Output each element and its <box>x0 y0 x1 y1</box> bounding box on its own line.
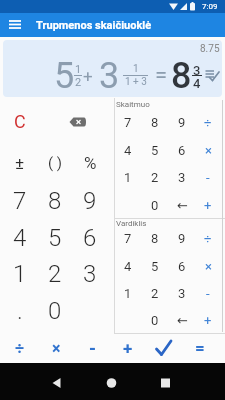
button[interactable]: ÷ <box>188 102 225 142</box>
button[interactable]: 9 <box>70 181 110 221</box>
button[interactable]: 4 <box>108 130 148 170</box>
staticText: ÷ <box>15 339 25 358</box>
button[interactable]: × <box>188 246 225 286</box>
staticText: 0 <box>48 297 62 325</box>
button[interactable]: 7 <box>108 102 148 142</box>
staticText: 8 <box>151 231 159 246</box>
button[interactable]: ÷ <box>188 218 225 258</box>
button[interactable]: 9 <box>162 218 202 258</box>
button[interactable]: 1 <box>0 254 40 294</box>
staticText: ← <box>177 198 188 213</box>
button[interactable]: × <box>188 130 225 170</box>
button[interactable]: ± <box>0 143 40 183</box>
button[interactable]: 8 <box>135 218 175 258</box>
button[interactable]: 5 <box>35 218 75 258</box>
staticText: 4 <box>13 224 27 252</box>
staticText: 4 <box>124 143 132 158</box>
staticText: 6 <box>83 224 97 252</box>
button[interactable]: 8 <box>35 181 75 221</box>
staticText: 5 <box>151 143 159 158</box>
button[interactable]: 2 <box>35 254 75 294</box>
button[interactable]: 0 <box>135 185 175 225</box>
button[interactable]: 3 <box>162 157 202 197</box>
button[interactable]: 1 <box>108 157 148 197</box>
button[interactable]: 4 <box>0 218 40 258</box>
staticText: C <box>14 111 26 132</box>
staticText: 2 <box>151 170 159 185</box>
button[interactable]: 2 <box>135 273 175 313</box>
staticText: 7:09 <box>202 2 218 11</box>
button[interactable]: - <box>188 273 225 313</box>
button[interactable]: 6 <box>162 246 202 286</box>
button[interactable]: 8 <box>135 102 175 142</box>
button[interactable]: 2 <box>135 157 175 197</box>
button[interactable]: - <box>72 328 112 368</box>
button[interactable]: 7 <box>108 218 148 258</box>
staticText: 9 <box>178 115 186 130</box>
staticText: + <box>204 198 212 213</box>
button[interactable]: 4 <box>108 246 148 286</box>
button[interactable]: × <box>36 328 76 368</box>
button[interactable] <box>42 368 72 398</box>
staticText: 1 <box>124 170 132 185</box>
staticText: % <box>84 153 97 173</box>
button[interactable]: + <box>188 185 225 225</box>
button[interactable] <box>150 368 180 398</box>
button[interactable]: ← <box>162 300 202 340</box>
button[interactable]: 5 <box>135 130 175 170</box>
staticText: Trupmenos skaičiuoklė <box>36 19 152 32</box>
button[interactable]: 3 <box>162 273 202 313</box>
button[interactable]: . <box>0 291 40 331</box>
button[interactable]: 5 <box>135 246 175 286</box>
button[interactable]: 0 <box>135 300 175 340</box>
staticText: 2 <box>75 76 82 88</box>
staticText: × <box>52 339 61 358</box>
staticText: 3 <box>178 286 186 301</box>
staticText: + <box>123 338 133 358</box>
button[interactable]: 3 <box>70 254 110 294</box>
staticText: 9 <box>178 231 186 246</box>
button[interactable]: ( ) <box>35 143 75 183</box>
button[interactable]: C <box>0 101 40 141</box>
button[interactable] <box>205 69 222 83</box>
button[interactable]: + <box>108 328 148 368</box>
staticText: ( ) <box>48 154 63 172</box>
staticText: 8.75 <box>200 43 220 55</box>
button[interactable]: 6 <box>162 130 202 170</box>
button[interactable]: 1 <box>108 273 148 313</box>
staticText: × <box>205 259 212 274</box>
button[interactable]: % <box>70 143 110 183</box>
staticText: 7 <box>124 231 132 246</box>
button[interactable]: + <box>188 300 225 340</box>
button[interactable] <box>96 368 126 398</box>
staticText: + <box>83 66 93 86</box>
button[interactable] <box>69 116 87 128</box>
staticText: = <box>155 62 168 88</box>
button[interactable]: 6 <box>70 218 110 258</box>
staticText: 3 <box>99 55 120 95</box>
staticText: 5 <box>48 224 62 252</box>
staticText: 8 <box>151 115 159 130</box>
button[interactable]: 7 <box>0 181 40 221</box>
button[interactable]: - <box>188 157 225 197</box>
staticText: + <box>204 313 212 328</box>
staticText: 1 + 3 <box>125 76 147 88</box>
staticText: 9 <box>83 187 97 215</box>
staticText: 8 <box>48 187 62 215</box>
staticText: 0 <box>151 198 159 213</box>
button[interactable]: = <box>180 328 220 368</box>
staticText: ← <box>177 313 188 328</box>
button[interactable]: ÷ <box>0 328 40 368</box>
button[interactable]: 0 <box>35 291 75 331</box>
staticText: 1 <box>124 286 132 301</box>
staticText: ÷ <box>204 231 212 246</box>
staticText: 2 <box>48 260 62 288</box>
staticText: = <box>195 338 205 358</box>
staticText: 3 <box>83 260 97 288</box>
button[interactable]: 9 <box>162 102 202 142</box>
button[interactable]: ← <box>162 185 202 225</box>
button[interactable] <box>7 17 25 33</box>
staticText: Skaitmuo <box>116 100 150 109</box>
button[interactable] <box>154 338 174 358</box>
staticText: 6 <box>178 259 186 274</box>
